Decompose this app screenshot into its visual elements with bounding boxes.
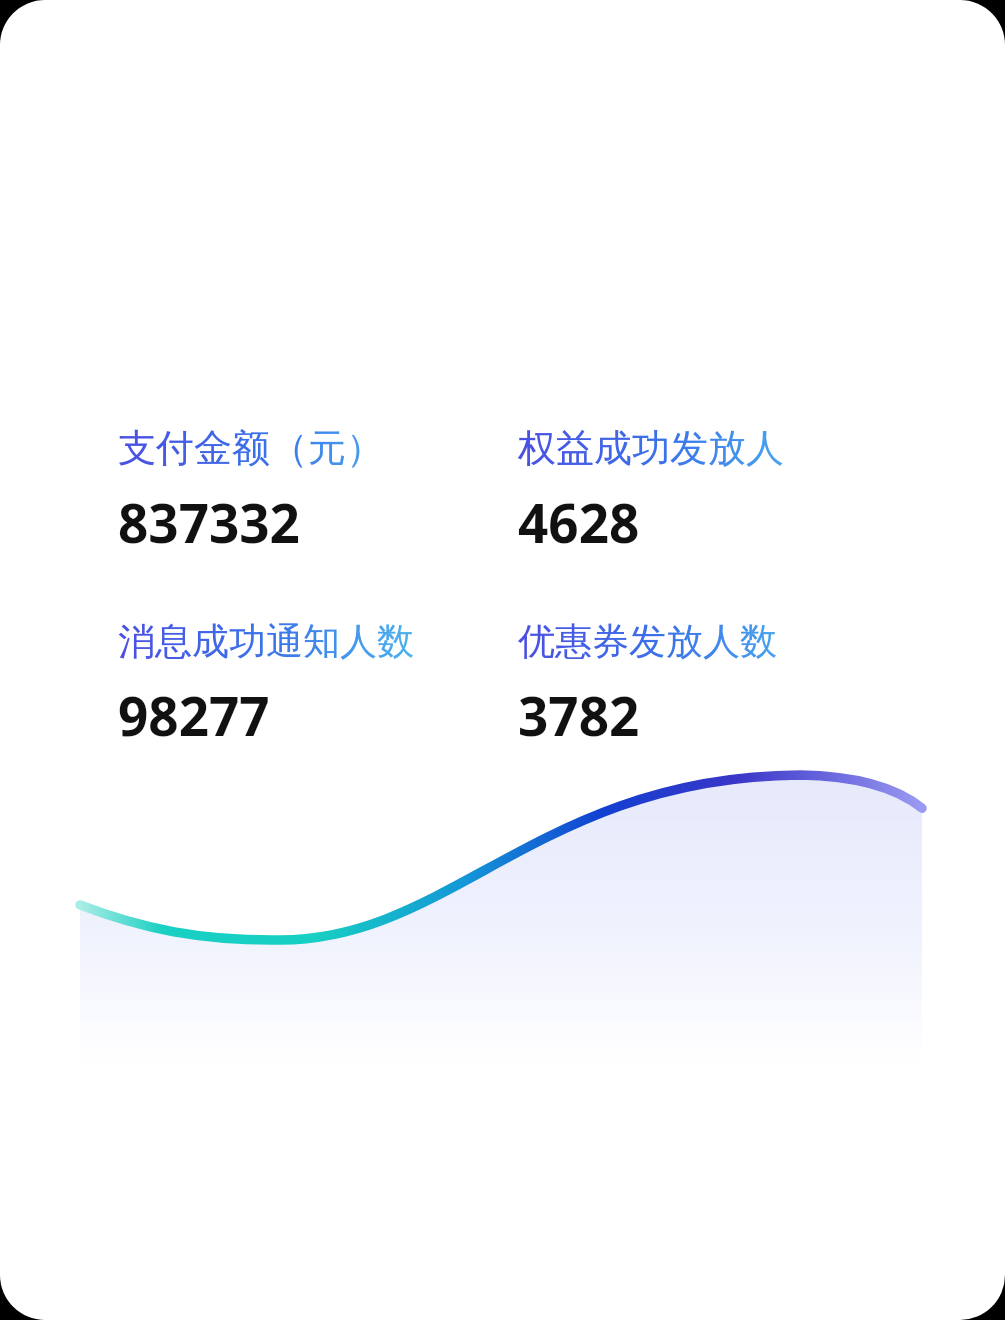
button[interactable]: 优惠券发放人数 [518, 618, 918, 751]
button[interactable]: 权益成功发放人 [518, 424, 918, 558]
staticText: 权益成功发放人 [518, 424, 784, 472]
staticText: 优惠券发放人数 [518, 618, 777, 665]
staticText: 98277 [118, 679, 270, 751]
button[interactable]: 支付金额（元） [118, 424, 518, 558]
staticText: 3782 [518, 679, 640, 751]
other: Trend chart [80, 760, 922, 1065]
staticText: 支付金额（元） [118, 424, 384, 472]
button[interactable]: 消息成功通知人数 [118, 618, 518, 751]
staticText: 消息成功通知人数 [118, 618, 414, 665]
staticText: 4628 [518, 486, 640, 558]
staticText: 837332 [118, 486, 300, 558]
